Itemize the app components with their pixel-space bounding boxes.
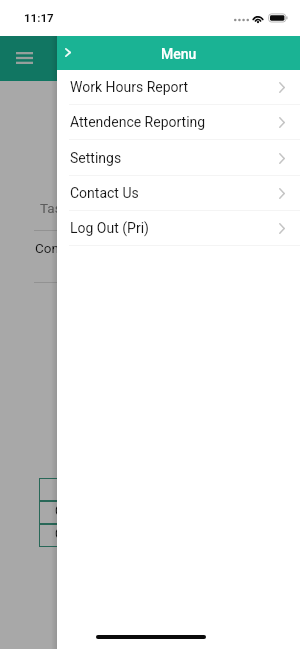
button[interactable]: Log Out (Pri) <box>57 211 300 246</box>
button[interactable]: Attendence Reporting <box>57 105 300 140</box>
staticText: Attendence Reporting <box>70 114 206 130</box>
button[interactable]: Open navigation menu <box>0 36 48 81</box>
staticText: 09:00 <box>55 503 88 518</box>
button[interactable]: Contact Us <box>57 176 300 211</box>
staticText: 09:30 <box>55 526 88 541</box>
staticText: Settings <box>70 150 122 166</box>
staticText: Work Hours Report <box>70 79 189 95</box>
staticText: 11:17 <box>24 11 54 24</box>
button[interactable]: Work Hours Report <box>57 70 300 105</box>
staticText: Contact Us <box>70 185 139 201</box>
staticText: Log Out (Pri) <box>70 220 149 236</box>
staticText: Contents of the task here <box>35 240 186 256</box>
button[interactable]: Settings <box>57 141 300 176</box>
button[interactable]: Close menu <box>57 36 83 70</box>
staticText: Menu <box>161 46 197 62</box>
staticText: Task Description <box>40 200 161 216</box>
